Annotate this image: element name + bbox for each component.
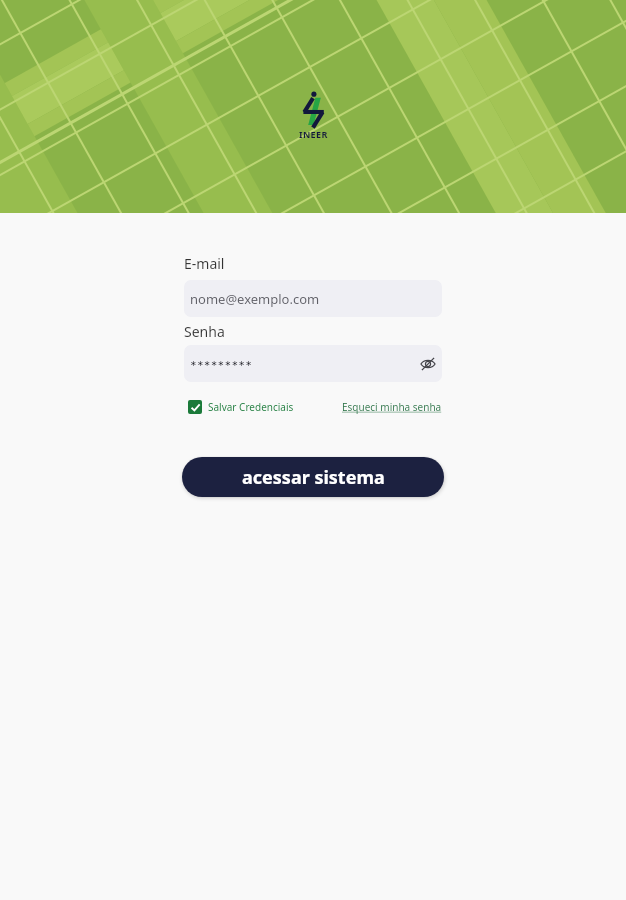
button[interactable]: nome@exemplo.com — [184, 280, 442, 317]
button[interactable]: Mostrar senha — [419, 355, 436, 372]
staticText: acessar sistema — [242, 465, 385, 490]
button[interactable]: Esqueci minha senha — [342, 400, 442, 414]
staticText: ∗∗∗∗∗∗∗∗∗ — [190, 359, 253, 368]
staticText: nome@exemplo.com — [190, 290, 320, 308]
button[interactable]: ∗∗∗∗∗∗∗∗∗ — [184, 345, 442, 382]
staticText: Salvar Credenciais — [208, 400, 294, 414]
staticText: INEER — [299, 128, 328, 140]
staticText: Esqueci minha senha — [342, 400, 442, 414]
button[interactable]: acessar sistema — [182, 457, 444, 497]
button[interactable]: Salvar Credenciais — [184, 400, 294, 414]
staticText: E-mail — [184, 254, 225, 273]
staticText: Senha — [184, 322, 225, 341]
